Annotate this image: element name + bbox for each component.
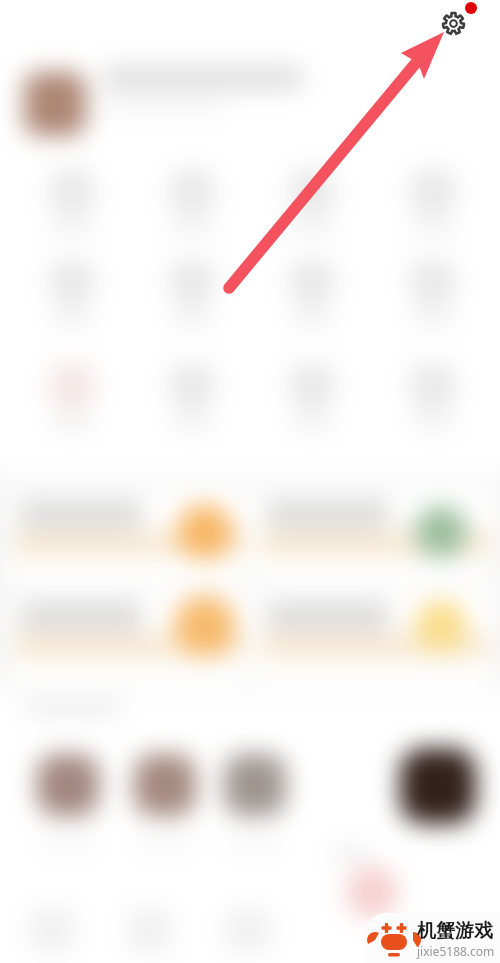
staticText: 机蟹游戏 [417,919,493,943]
button[interactable] [170,364,214,408]
button[interactable] [411,170,455,214]
button[interactable] [50,260,94,304]
button[interactable] [224,754,286,816]
button[interactable] [50,364,94,408]
button[interactable] [400,748,476,824]
button[interactable] [290,364,334,408]
button[interactable]: Settings [441,11,466,36]
button[interactable] [253,486,496,582]
button[interactable] [411,260,455,304]
button[interactable] [6,486,249,582]
button[interactable] [253,588,496,684]
button[interactable] [6,588,249,684]
button[interactable] [290,170,334,214]
button[interactable] [24,72,86,136]
button[interactable] [134,754,196,816]
staticText: jixie5188.com [417,943,495,959]
button[interactable] [170,170,214,214]
button[interactable] [37,754,99,816]
button[interactable] [170,260,214,304]
button[interactable] [290,260,334,304]
button[interactable] [50,170,94,214]
button[interactable] [411,364,455,408]
